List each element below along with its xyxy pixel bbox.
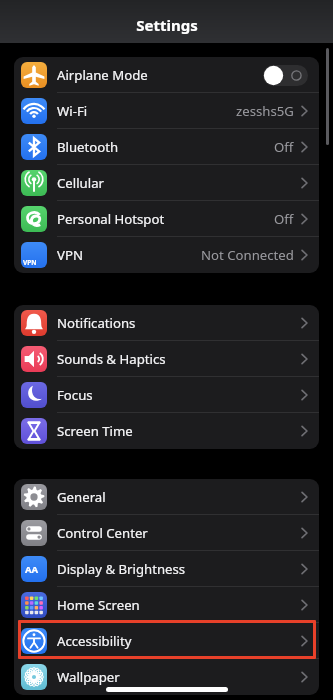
staticText: Not Connected: [201, 246, 294, 264]
staticText: Settings: [136, 15, 198, 35]
staticText: Personal Hotspot: [57, 210, 165, 228]
button[interactable]: Notifications: [14, 305, 319, 341]
button[interactable]: Personal Hotspot: [14, 201, 319, 237]
staticText: Display & Brightness: [57, 560, 186, 578]
staticText: Off: [274, 138, 294, 156]
staticText: Control Center: [57, 524, 148, 542]
button[interactable]: [263, 65, 308, 86]
button[interactable]: General: [14, 479, 319, 515]
staticText: Airplane Mode: [57, 66, 148, 84]
staticText: Wi-Fi: [57, 102, 88, 120]
staticText: Focus: [57, 386, 93, 404]
button[interactable]: Focus: [14, 377, 319, 413]
staticText: zesshs5G: [236, 102, 294, 120]
staticText: Bluetooth: [57, 138, 119, 156]
button[interactable]: Wi-Fi: [14, 93, 319, 129]
button[interactable]: Home Screen: [14, 587, 319, 623]
staticText: Notifications: [57, 314, 136, 332]
button[interactable]: Accessibility: [14, 623, 319, 659]
button[interactable]: Control Center: [14, 515, 319, 551]
button[interactable]: Display & Brightness: [14, 551, 319, 587]
button[interactable]: Sounds & Haptics: [14, 341, 319, 377]
staticText: VPN: [23, 258, 37, 267]
button[interactable]: Screen Time: [14, 413, 319, 449]
staticText: Cellular: [57, 174, 104, 192]
button[interactable]: Cellular: [14, 165, 319, 201]
staticText: Sounds & Haptics: [57, 350, 166, 368]
button[interactable]: Airplane Mode: [14, 57, 319, 93]
staticText: Wallpaper: [57, 668, 120, 686]
staticText: Screen Time: [57, 422, 133, 440]
staticText: Off: [274, 210, 294, 228]
staticText: Accessibility: [57, 632, 132, 650]
staticText: Home Screen: [57, 596, 140, 614]
button[interactable]: VPN: [14, 237, 319, 273]
button[interactable]: Bluetooth: [14, 129, 319, 165]
button[interactable]: Wallpaper: [14, 659, 319, 695]
staticText: AA: [25, 563, 39, 576]
staticText: VPN: [57, 246, 83, 264]
staticText: General: [57, 488, 106, 506]
